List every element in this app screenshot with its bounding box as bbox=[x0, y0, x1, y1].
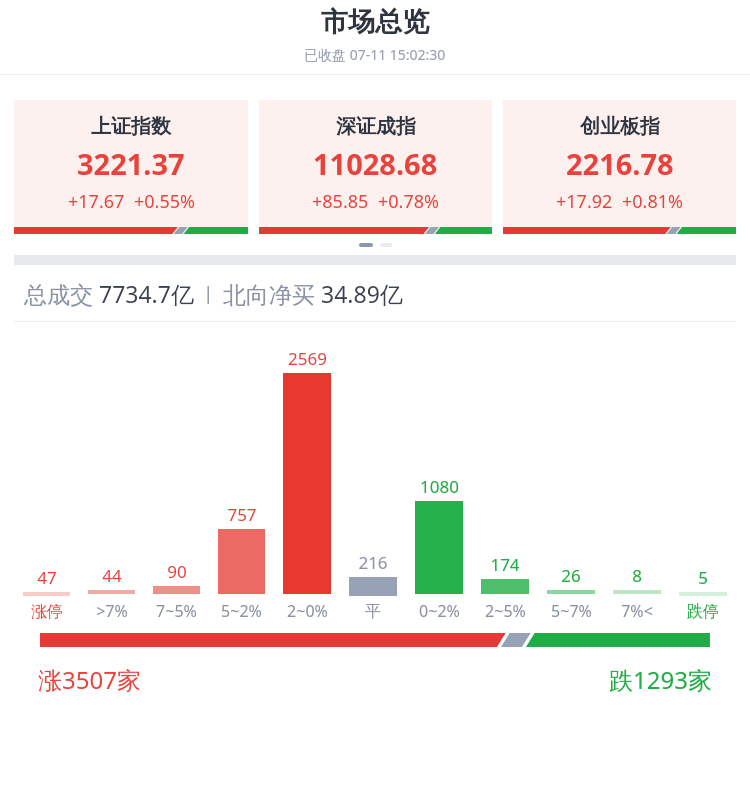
staticText: +85.85 bbox=[312, 189, 369, 214]
staticText: 7734.7亿 bbox=[99, 278, 194, 309]
staticText: 涨3507家 bbox=[38, 663, 141, 696]
staticText: +0.78% bbox=[378, 189, 439, 214]
button[interactable]: 涨3507家 bbox=[36, 661, 143, 698]
staticText: 北向净买 bbox=[223, 278, 321, 309]
staticText: 7%< bbox=[621, 600, 653, 622]
staticText: 44 bbox=[102, 564, 122, 587]
staticText: 2~5% bbox=[485, 600, 526, 622]
staticText: 757 bbox=[227, 503, 257, 526]
staticText: 26 bbox=[561, 564, 581, 587]
button[interactable]: 1080 bbox=[406, 475, 472, 622]
staticText: 涨停 bbox=[31, 602, 63, 622]
staticText: +0.81% bbox=[622, 189, 683, 214]
staticText: 0~2% bbox=[419, 600, 460, 622]
staticText: 11028.68 bbox=[313, 144, 438, 183]
staticText: 47 bbox=[37, 566, 57, 589]
staticText: 174 bbox=[490, 553, 520, 576]
staticText: 平 bbox=[365, 602, 381, 622]
button[interactable]: 47 bbox=[14, 566, 79, 622]
staticText: 5 bbox=[698, 566, 708, 589]
staticText: 7~5% bbox=[156, 600, 197, 622]
staticText: 市场总览 bbox=[321, 5, 429, 39]
staticText: +17.67 bbox=[68, 189, 125, 214]
button[interactable]: 8 bbox=[604, 564, 670, 622]
staticText: 创业板指 bbox=[580, 114, 660, 139]
button[interactable]: 174 bbox=[472, 553, 538, 622]
staticText: 90 bbox=[167, 560, 187, 583]
staticText: | bbox=[194, 281, 223, 306]
staticText: 2569 bbox=[288, 347, 327, 370]
staticText: 总成交 bbox=[24, 278, 99, 309]
button[interactable]: 创业板指 bbox=[503, 100, 736, 234]
staticText: 上证指数 bbox=[91, 114, 171, 139]
staticText: +0.55% bbox=[134, 189, 195, 214]
staticText: 跌1293家 bbox=[609, 663, 712, 696]
staticText: 2216.78 bbox=[566, 144, 674, 183]
staticText: 深证成指 bbox=[336, 114, 416, 139]
staticText: 跌停 bbox=[687, 602, 719, 622]
button[interactable]: 5 bbox=[670, 566, 736, 622]
staticText: 34.89亿 bbox=[321, 278, 403, 309]
button[interactable]: 90 bbox=[144, 560, 209, 622]
button[interactable]: 757 bbox=[209, 503, 274, 622]
button[interactable]: 跌1293家 bbox=[607, 661, 714, 698]
staticText: 已收盘 07-11 15:02:30 bbox=[304, 45, 446, 64]
staticText: 216 bbox=[358, 551, 388, 574]
button[interactable]: 2569 bbox=[274, 347, 340, 622]
staticText: 1080 bbox=[420, 475, 459, 498]
button[interactable]: 216 bbox=[340, 551, 406, 622]
staticText: +17.92 bbox=[556, 189, 613, 214]
staticText: >7% bbox=[96, 600, 128, 622]
staticText: 2~0% bbox=[287, 600, 328, 622]
button[interactable]: 深证成指 bbox=[259, 100, 492, 234]
staticText: 5~2% bbox=[221, 600, 262, 622]
button[interactable]: 44 bbox=[79, 564, 144, 622]
button[interactable]: 上证指数 bbox=[14, 100, 248, 234]
staticText: 3221.37 bbox=[77, 144, 185, 183]
staticText: 8 bbox=[632, 564, 642, 587]
staticText: 5~7% bbox=[551, 600, 592, 622]
button[interactable]: 26 bbox=[538, 564, 604, 622]
